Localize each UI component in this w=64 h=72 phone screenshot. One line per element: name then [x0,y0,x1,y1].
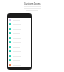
button[interactable] [8,37,31,40]
button[interactable] [8,46,31,49]
button[interactable] [8,50,31,53]
button[interactable] [8,28,31,31]
button[interactable] [8,55,31,58]
button[interactable] [8,19,31,22]
button[interactable] [8,64,31,67]
button[interactable] [8,23,31,26]
button[interactable] [8,32,31,35]
staticText: Custom Icons [24,2,41,5]
button[interactable] [8,41,31,44]
button[interactable] [8,59,31,62]
